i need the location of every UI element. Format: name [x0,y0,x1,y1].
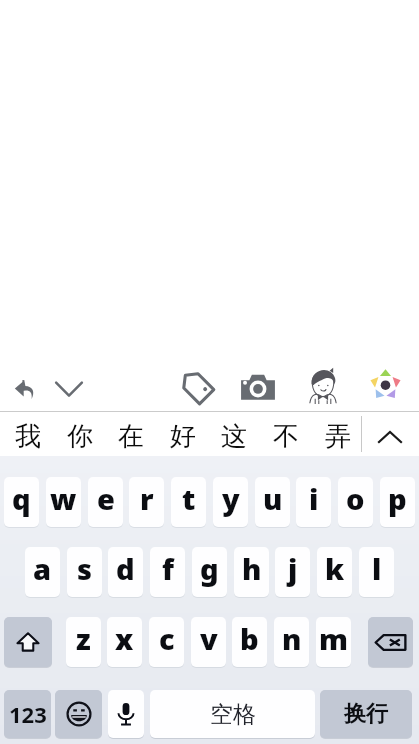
button[interactable]: l [359,547,394,597]
button[interactable]: j [275,547,310,597]
staticText: 不 [273,420,299,453]
button[interactable]: s [67,547,102,597]
button[interactable]: n [274,617,309,667]
staticText: 换行 [344,700,388,728]
button[interactable]: v [191,617,226,667]
button[interactable]: 弄 [312,412,364,456]
button[interactable]: w [46,477,81,527]
button[interactable]: p [380,477,415,527]
staticText: z [76,619,91,658]
button[interactable]: Shift [4,617,52,667]
button[interactable]: k [317,547,352,597]
staticText: q [12,479,31,518]
staticText: h [242,549,262,588]
button[interactable]: Stickers [369,368,402,401]
staticText: p [388,479,407,518]
staticText: f [162,549,174,588]
button[interactable]: c [149,617,184,667]
button[interactable]: Voice input [108,690,144,738]
button[interactable]: a [25,547,60,597]
staticText: x [115,619,134,658]
button[interactable]: Backspace [368,617,413,667]
button[interactable]: Emoticons [308,367,338,404]
staticText: i [309,479,319,518]
button[interactable]: 不 [260,412,312,456]
staticText: l [372,549,382,588]
button[interactable]: 这 [208,412,260,456]
staticText: c [159,619,175,658]
button[interactable]: b [232,617,267,667]
button[interactable]: 你 [54,412,106,456]
button[interactable]: i [296,477,331,527]
staticText: 弄 [325,420,351,453]
staticText: v [200,619,218,658]
staticText: s [77,549,92,588]
staticText: b [240,619,259,658]
button[interactable]: Tag [178,368,214,404]
staticText: n [282,619,302,658]
staticText: 你 [67,420,93,453]
button[interactable]: t [171,477,206,527]
staticText: 在 [118,420,144,453]
button[interactable]: Undo [14,378,35,399]
staticText: a [33,549,52,588]
button[interactable]: Emoji keyboard [55,690,102,738]
button[interactable]: g [192,547,227,597]
button[interactable]: Hide keyboard [55,381,83,397]
staticText: g [200,549,219,588]
staticText: t [182,479,196,518]
staticText: 我 [15,420,41,453]
button[interactable]: z [66,617,101,667]
button[interactable]: d [108,547,143,597]
staticText: y [222,479,240,518]
staticText: o [346,479,365,518]
button[interactable]: 换行 [320,690,412,738]
button[interactable]: f [150,547,185,597]
staticText: e [97,479,115,518]
staticText: k [325,549,345,588]
button[interactable]: 好 [157,412,209,456]
staticText: d [116,549,135,588]
staticText: 123 [9,699,47,729]
button[interactable]: y [213,477,248,527]
button[interactable]: 在 [105,412,157,456]
button[interactable]: Camera [240,371,276,402]
button[interactable]: o [338,477,373,527]
button[interactable]: Expand candidates [362,412,419,456]
button[interactable]: e [88,477,123,527]
staticText: w [50,479,77,518]
button[interactable]: 123 [4,690,51,738]
staticText: r [140,479,154,518]
button[interactable]: 空格 [150,690,315,738]
button[interactable]: x [107,617,142,667]
staticText: j [288,549,298,588]
staticText: m [319,619,349,658]
button[interactable]: r [129,477,164,527]
button[interactable]: u [255,477,290,527]
button[interactable]: m [316,617,351,667]
button[interactable]: 我 [2,412,54,456]
staticText: 好 [170,420,196,453]
staticText: 这 [221,420,247,453]
button[interactable]: q [4,477,39,527]
staticText: u [263,479,283,518]
button[interactable]: h [234,547,269,597]
staticText: 空格 [210,700,256,729]
